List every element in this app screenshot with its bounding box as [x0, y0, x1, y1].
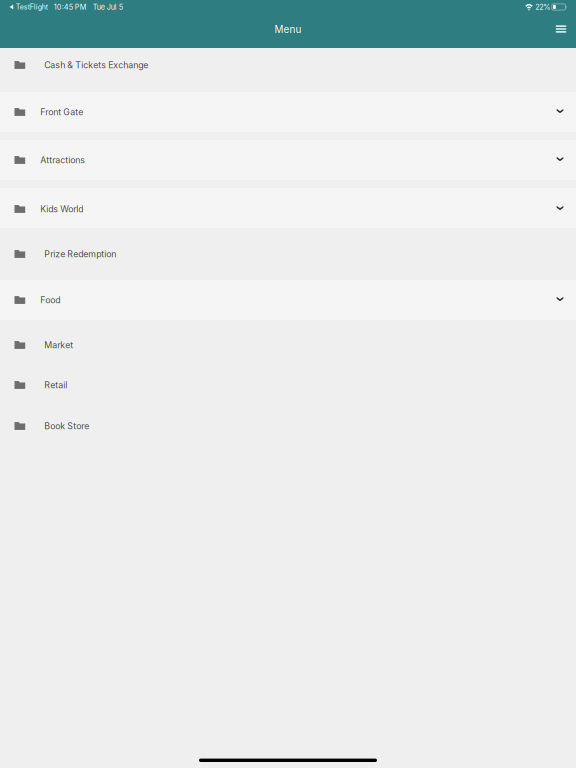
staticText: 22%: [535, 3, 550, 11]
staticText: Attractions: [40, 155, 85, 165]
staticText: Prize Redemption: [44, 249, 116, 259]
staticText: Book Store: [44, 421, 89, 431]
staticText: Tue Jul 5: [93, 3, 123, 11]
staticText: Menu: [274, 23, 301, 35]
button[interactable]: Prize Redemption: [0, 228, 576, 280]
button[interactable]: Front Gate: [0, 92, 576, 132]
button[interactable]: Attractions: [0, 140, 576, 180]
staticText: Market: [44, 340, 73, 350]
button[interactable]: Kids World: [0, 188, 576, 228]
staticText: Retail: [44, 380, 67, 390]
staticText: Food: [40, 295, 60, 305]
button[interactable]: Food: [0, 280, 576, 320]
staticText: 10:45 PM: [54, 3, 87, 11]
button[interactable]: Market: [0, 320, 576, 364]
button[interactable]: Cash & Tickets Exchange: [0, 48, 576, 92]
staticText: Kids World: [40, 204, 83, 214]
staticText: Cash & Tickets Exchange: [44, 60, 148, 70]
button[interactable]: Book Store: [0, 404, 576, 444]
staticText: Front Gate: [40, 107, 83, 117]
button[interactable]: Retail: [0, 364, 576, 404]
button[interactable]: Menu: [549, 18, 573, 40]
staticText: TestFlight: [16, 3, 48, 11]
